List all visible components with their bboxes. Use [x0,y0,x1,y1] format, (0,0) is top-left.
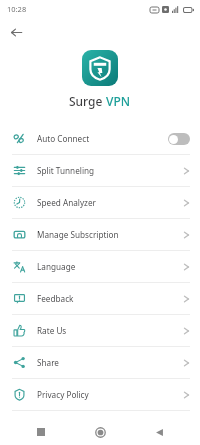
button[interactable]: Home [89,421,111,443]
button[interactable]: Back [148,421,170,443]
button[interactable]: Share [0,347,200,378]
button[interactable]: Split Tunneling [0,155,200,186]
button[interactable]: Privacy Policy [0,379,200,410]
staticText: Auto Connect [37,133,168,144]
button[interactable]: Back [4,20,28,44]
button[interactable]: Feedback [0,283,200,314]
staticText: 10:28 [7,4,27,14]
staticText: Manage Subscription [37,229,183,240]
button[interactable]: Manage Subscription [0,219,200,250]
staticText: Rate Us [37,325,183,336]
button[interactable]: Auto Connect toggle [168,133,190,145]
staticText: Language [37,261,183,272]
staticText: Surge [69,93,106,109]
staticText: VPN [106,93,131,109]
button[interactable]: Speed Analyzer [0,187,200,218]
button[interactable]: Auto Connect [0,123,200,154]
staticText: Privacy Policy [37,389,183,400]
staticText: Split Tunneling [37,165,183,176]
button[interactable]: Language [0,251,200,282]
staticText: Speed Analyzer [37,197,183,208]
staticText: Share [37,357,183,368]
staticText: Feedback [37,293,183,304]
button[interactable]: Rate Us [0,315,200,346]
button[interactable]: Recent apps [30,421,52,443]
